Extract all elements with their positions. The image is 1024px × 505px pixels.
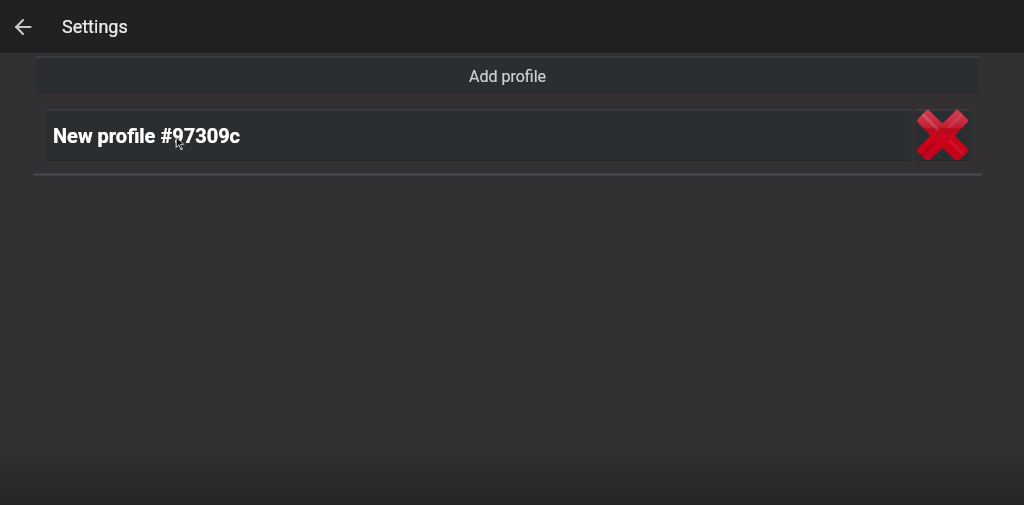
staticText: Settings	[62, 16, 128, 37]
button[interactable]: Back	[8, 12, 38, 42]
button[interactable]: Add profile	[36, 56, 979, 93]
button[interactable]: Delete profile	[916, 109, 969, 161]
button[interactable]: New profile #97309c	[46, 109, 911, 161]
staticText: Add profile	[469, 67, 547, 86]
staticText: New profile #97309c	[53, 124, 241, 147]
